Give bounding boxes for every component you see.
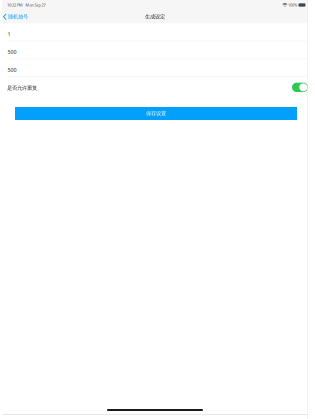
staticText: 保存设置 [146,110,166,117]
button[interactable]: 是否允许重复 [292,80,308,92]
staticText: Mon Sep 27 [26,2,46,8]
button[interactable]: 随机抽号 [2,10,32,23]
staticText: 500 [8,48,17,56]
staticText: 1 [8,31,11,38]
button[interactable]: 保存设置 [15,107,297,120]
staticText: 是否允许重复 [7,85,37,91]
staticText: 10:22 PM [7,2,23,8]
staticText: 500 [8,66,17,73]
staticText: 100% [288,2,297,8]
staticText: 随机抽号 [8,13,28,20]
staticText: 生成设定 [145,13,165,20]
